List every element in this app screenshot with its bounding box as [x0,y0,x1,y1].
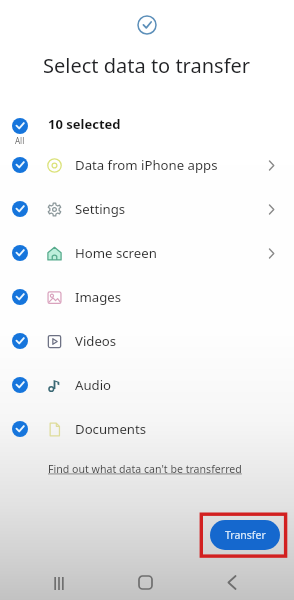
staticText: Audio [75,376,112,394]
button[interactable]: Videos [0,319,294,363]
staticText: Data from iPhone apps [75,156,218,174]
staticText: Videos [75,332,117,350]
staticText: Documents [75,420,147,438]
button[interactable]: Audio [0,363,294,407]
staticText: Settings [75,200,126,218]
button[interactable]: All [0,113,294,147]
staticText: Images [75,288,122,306]
staticText: Find out what data can't be transferred [48,462,242,476]
staticText: Home screen [75,244,157,262]
button[interactable]: Data from iPhone apps [0,143,294,187]
staticText: Transfer [225,528,266,542]
staticText: 10 selected [48,115,121,133]
button[interactable]: Settings [0,187,294,231]
button[interactable]: Find out what data can't be transferred [0,462,294,480]
button[interactable]: Documents [0,407,294,451]
staticText: Select data to transfer [43,52,251,79]
staticText: All [15,135,25,146]
button[interactable]: Home [128,565,162,599]
button[interactable]: Transfer [210,520,280,550]
button[interactable]: Recents [42,566,76,600]
button[interactable]: Home screen [0,231,294,275]
button[interactable]: Images [0,275,294,319]
button[interactable]: Back [215,565,249,599]
